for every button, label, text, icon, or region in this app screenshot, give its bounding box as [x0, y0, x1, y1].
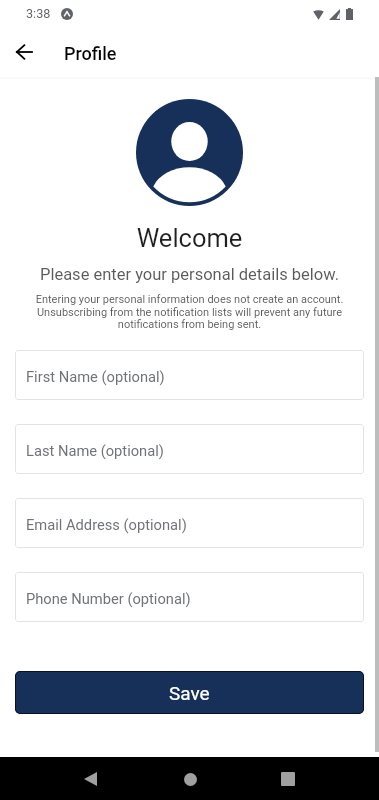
- staticText: Entering your personal information does …: [30, 293, 349, 331]
- staticText: Phone Number (optional): [26, 590, 191, 607]
- button[interactable]: Email Address (optional): [15, 498, 364, 548]
- staticText: First Name (optional): [26, 368, 165, 385]
- button[interactable]: Home: [170, 759, 210, 799]
- button[interactable]: Back: [0, 28, 48, 76]
- staticText: Email Address (optional): [26, 516, 187, 533]
- staticText: Last Name (optional): [26, 442, 164, 459]
- staticText: Profile: [64, 43, 117, 64]
- button[interactable]: First Name (optional): [15, 350, 364, 400]
- button[interactable]: Last Name (optional): [15, 424, 364, 474]
- button[interactable]: Save: [15, 671, 364, 714]
- staticText: 3:38: [26, 6, 51, 21]
- button[interactable]: Phone Number (optional): [15, 572, 364, 622]
- button[interactable]: Back: [70, 759, 110, 799]
- staticText: Welcome: [0, 223, 379, 253]
- staticText: Please enter your personal details below…: [0, 265, 379, 284]
- staticText: Save: [169, 682, 210, 704]
- button[interactable]: Recents: [268, 759, 308, 799]
